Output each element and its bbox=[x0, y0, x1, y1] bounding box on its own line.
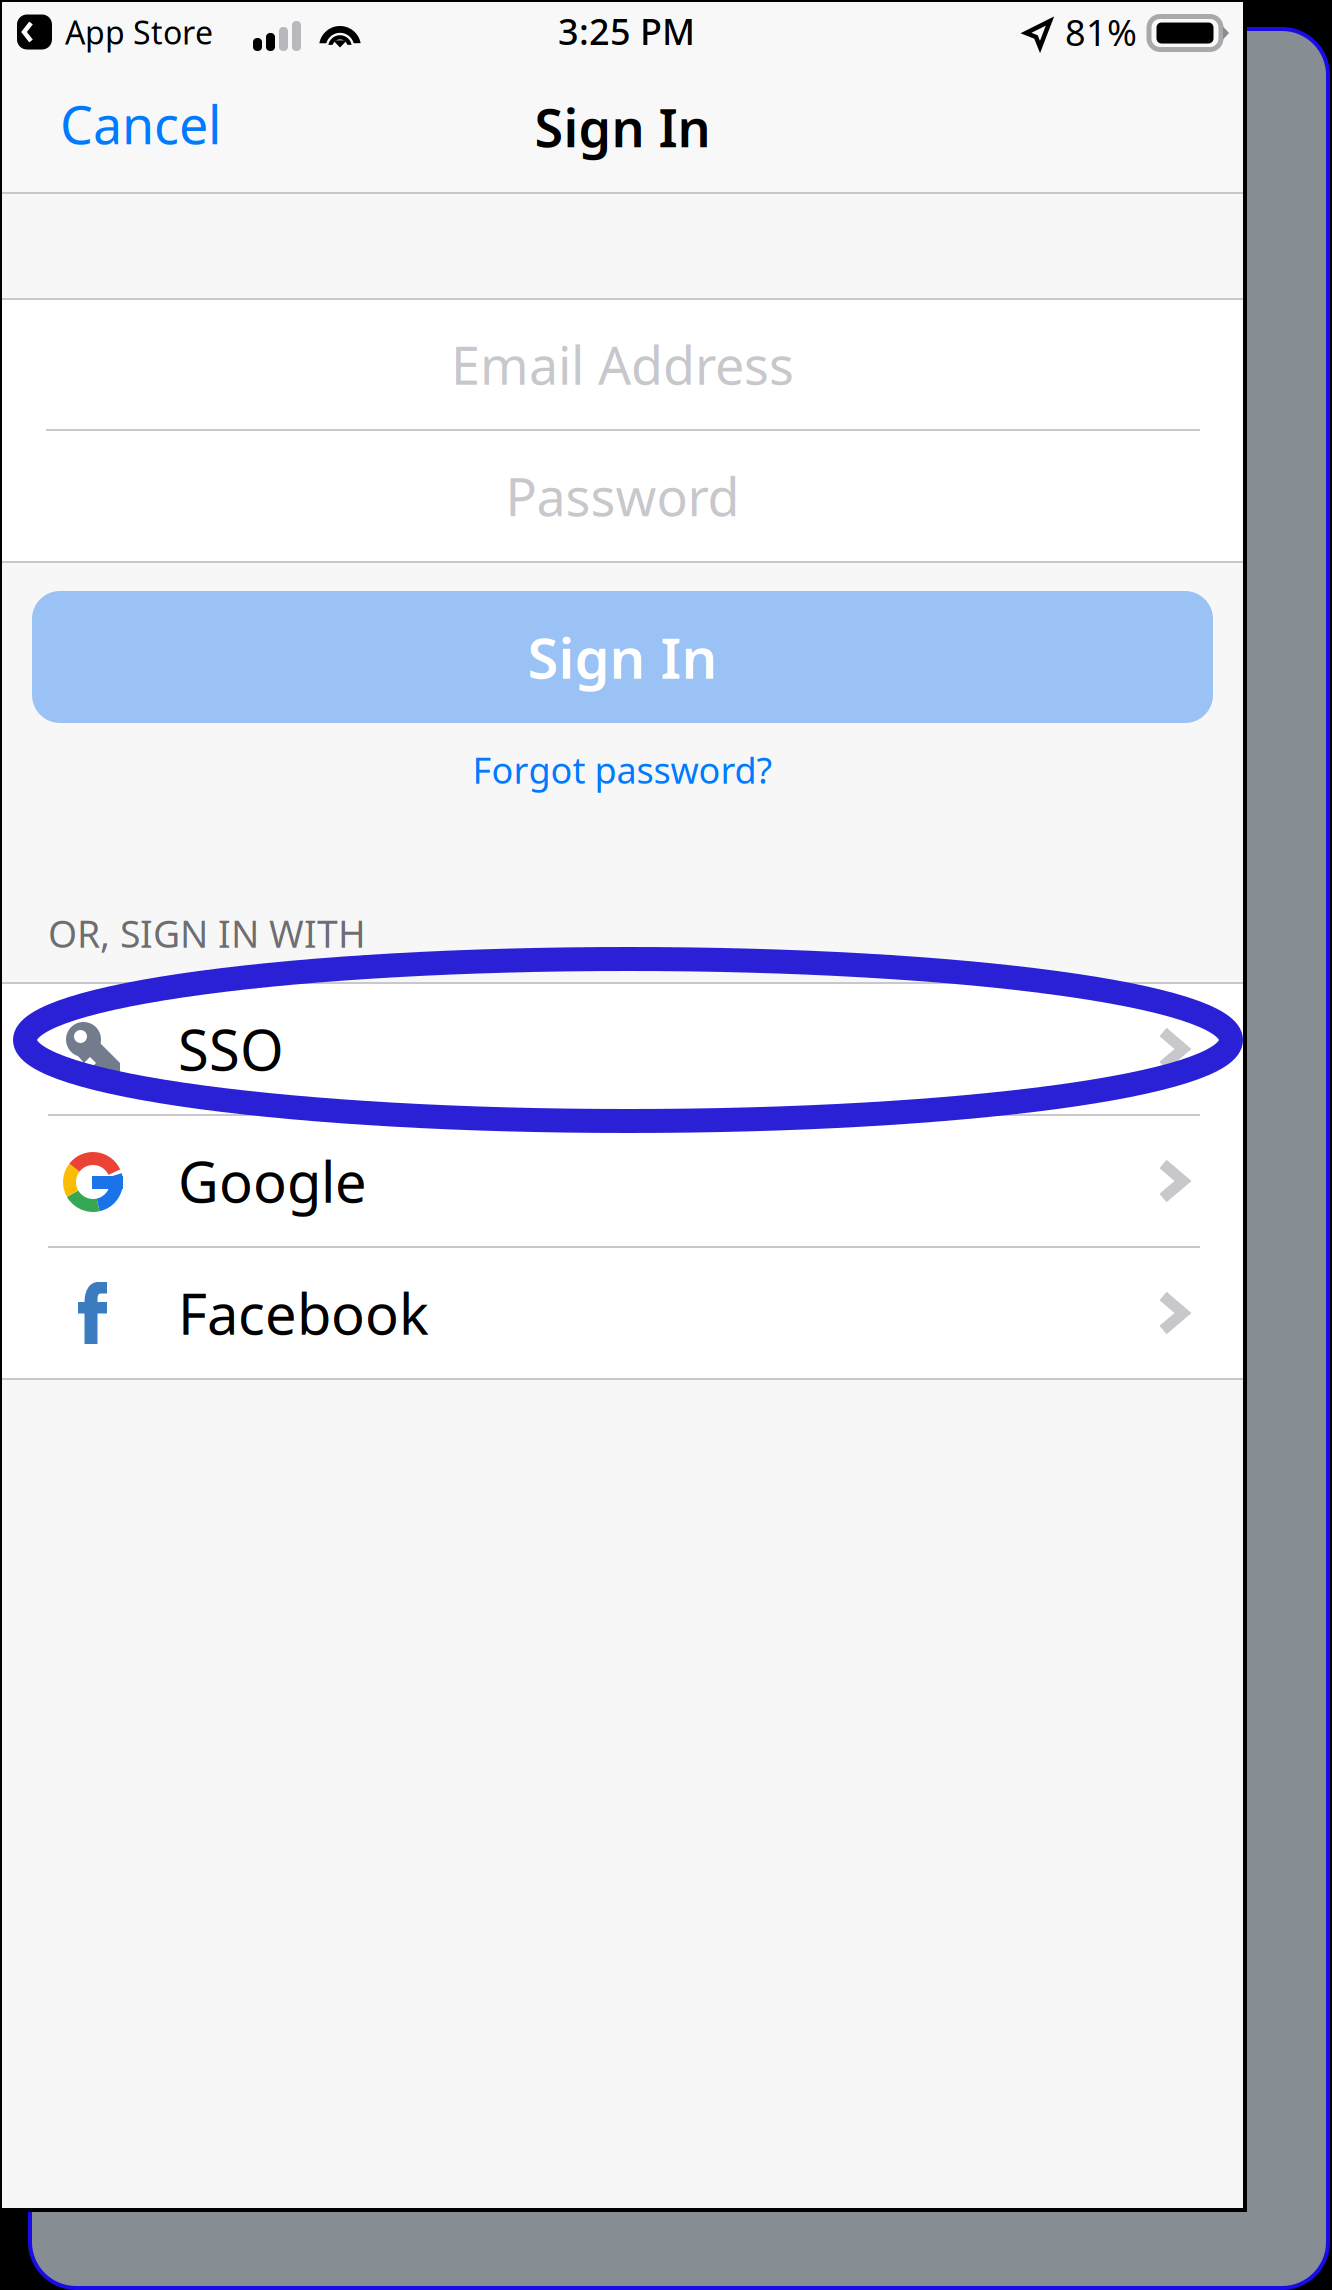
staticText: Password bbox=[505, 461, 739, 531]
staticText: Cancel bbox=[60, 89, 221, 159]
staticText: Google bbox=[178, 1144, 367, 1218]
staticText: Sign In bbox=[527, 620, 717, 694]
staticText: App Store bbox=[65, 11, 213, 53]
button[interactable]: Cancel bbox=[46, 79, 235, 175]
staticText: OR, SIGN IN WITH bbox=[48, 908, 366, 958]
button[interactable]: SSO bbox=[2, 984, 1243, 1114]
button[interactable]: Sign In bbox=[32, 591, 1213, 723]
button[interactable]: Forgot password? bbox=[2, 723, 1243, 807]
staticText: Facebook bbox=[178, 1276, 429, 1350]
staticText: SSO bbox=[178, 1012, 284, 1086]
staticText: 3:25 PM bbox=[558, 7, 695, 55]
staticText: Sign In bbox=[534, 92, 710, 162]
staticText: Email Address bbox=[451, 330, 794, 399]
button[interactable]: Google bbox=[2, 1116, 1243, 1246]
button[interactable]: Facebook bbox=[2, 1248, 1243, 1378]
staticText: 81% bbox=[1065, 8, 1137, 56]
staticText: Forgot password? bbox=[472, 746, 772, 794]
